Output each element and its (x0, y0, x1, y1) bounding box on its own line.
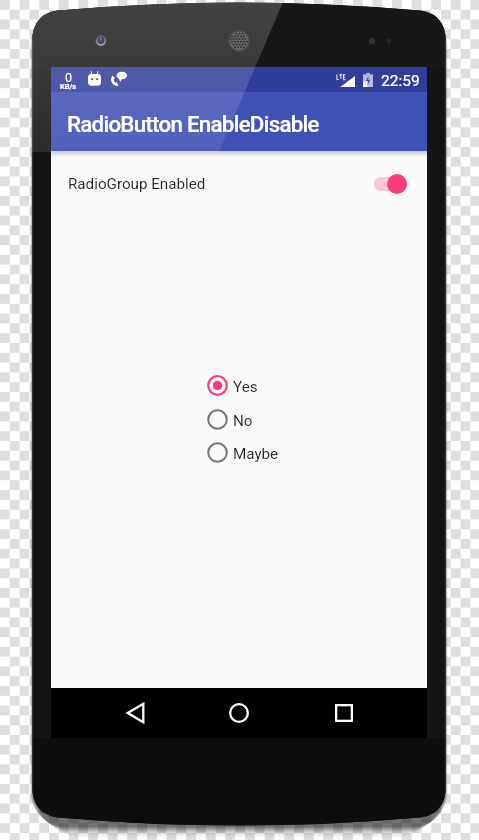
staticText: Maybe (233, 445, 279, 463)
staticText: KB/s (60, 82, 77, 91)
button[interactable]: Back (105, 690, 165, 736)
staticText: No (233, 412, 253, 430)
button[interactable]: Maybe (207, 435, 279, 469)
staticText: Yes (233, 378, 258, 396)
staticText: RadioGroup Enabled (68, 175, 206, 193)
button[interactable]: Yes (207, 368, 258, 402)
button[interactable]: Home (209, 690, 269, 736)
staticText: 0 (65, 70, 73, 85)
button[interactable]: Recent apps (314, 690, 374, 736)
staticText: 22:59 (381, 72, 420, 90)
button[interactable]: No (207, 402, 253, 436)
button[interactable]: RadioGroup Enabled switch (374, 172, 407, 196)
button[interactable]: RadioGroup Enabled (51, 151, 427, 217)
staticText: RadioButton EnableDisable (67, 111, 319, 137)
